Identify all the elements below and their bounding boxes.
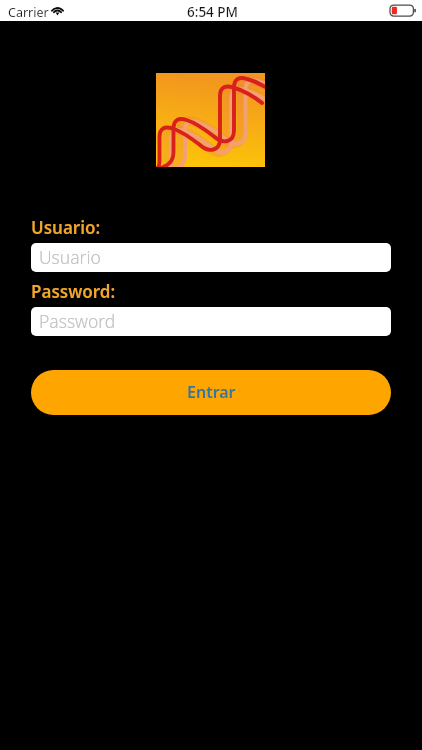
button[interactable]: Usuario <box>31 243 391 272</box>
button[interactable]: Password <box>31 307 391 336</box>
staticText: Usuario: <box>31 216 101 239</box>
staticText: Carrier <box>8 4 49 21</box>
button[interactable]: Entrar <box>31 370 391 415</box>
staticText: Password: <box>31 280 116 303</box>
staticText: Entrar <box>187 381 236 403</box>
staticText: Usuario <box>39 245 101 269</box>
staticText: Password <box>39 309 116 333</box>
staticText: 6:54 PM <box>187 3 238 21</box>
